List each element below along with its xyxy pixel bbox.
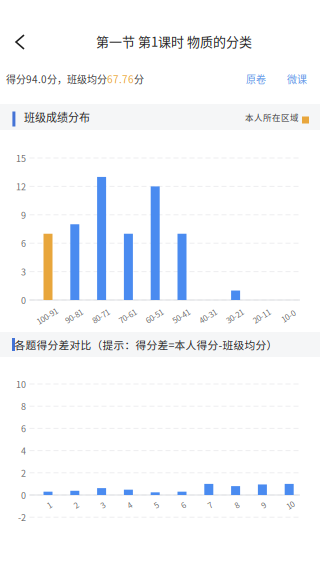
staticText: 微课 (287, 72, 307, 86)
staticText: -2 (18, 511, 26, 524)
staticText: 10 (286, 499, 294, 511)
staticText: 30-21 (225, 310, 244, 322)
staticText: 70-61 (118, 310, 137, 322)
staticText: 分 (134, 72, 144, 86)
staticText: 3 (101, 499, 105, 511)
staticText: 67.76 (107, 72, 134, 86)
staticText: 90-81 (64, 310, 83, 322)
staticText: 3 (21, 265, 26, 278)
staticText: 本人所在区域 (245, 111, 299, 123)
staticText: 班级成绩分布 (24, 109, 90, 125)
staticText: 6 (21, 237, 26, 250)
staticText: 2 (21, 466, 26, 479)
staticText: 0 (21, 488, 26, 501)
staticText: 40-31 (198, 310, 217, 322)
button[interactable]: 微课 (280, 68, 314, 90)
staticText: 15 (16, 151, 26, 164)
staticText: 4 (21, 444, 26, 457)
staticText: 4 (127, 499, 131, 511)
staticText: 得分94.0分，班级均分 (6, 72, 107, 86)
staticText: 6 (181, 499, 185, 511)
staticText: 50-41 (171, 310, 190, 322)
staticText: 10 (16, 377, 26, 390)
staticText: 80-71 (91, 310, 110, 322)
button[interactable]: 原卷 (239, 68, 273, 90)
staticText: 1 (47, 499, 51, 511)
staticText: 12 (16, 180, 26, 193)
staticText: 7 (208, 499, 212, 511)
staticText: 9 (21, 208, 26, 221)
staticText: 9 (261, 499, 265, 511)
staticText: 2 (74, 499, 78, 511)
button[interactable]: Back (0, 19, 42, 63)
staticText: 原卷 (246, 72, 266, 86)
staticText: 8 (235, 499, 239, 511)
staticText: 10-0 (281, 310, 296, 322)
staticText: 20-11 (252, 310, 271, 322)
staticText: 100-91 (35, 310, 58, 322)
staticText: 5 (154, 499, 158, 511)
staticText: 0 (21, 293, 26, 306)
staticText: 8 (21, 400, 26, 413)
staticText: 各题得分差对比（提示：得分差=本人得分-班级均分） (14, 337, 277, 352)
staticText: 第一节 第1课时 物质的分类 (96, 32, 252, 50)
staticText: 6 (21, 422, 26, 435)
staticText: 60-51 (145, 310, 164, 322)
